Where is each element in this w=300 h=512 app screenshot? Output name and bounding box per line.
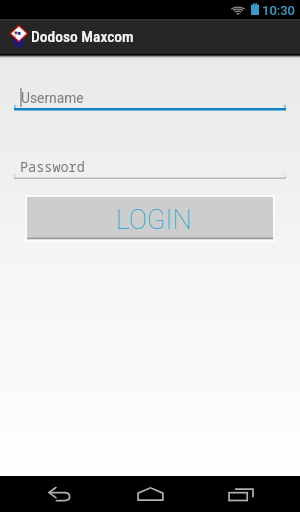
staticText: Password bbox=[20, 158, 85, 176]
button[interactable]: Recent apps bbox=[205, 476, 277, 512]
button[interactable]: LOGIN bbox=[27, 197, 273, 239]
staticText: Dodoso Maxcom bbox=[31, 28, 134, 46]
staticText: LOGIN bbox=[116, 204, 192, 236]
button[interactable]: Back bbox=[23, 476, 95, 512]
staticText: 10:30 bbox=[262, 3, 295, 18]
button[interactable]: Username bbox=[14, 84, 286, 111]
button[interactable]: Password bbox=[14, 153, 286, 180]
staticText: Username bbox=[21, 90, 84, 106]
button[interactable]: Home bbox=[114, 476, 186, 512]
